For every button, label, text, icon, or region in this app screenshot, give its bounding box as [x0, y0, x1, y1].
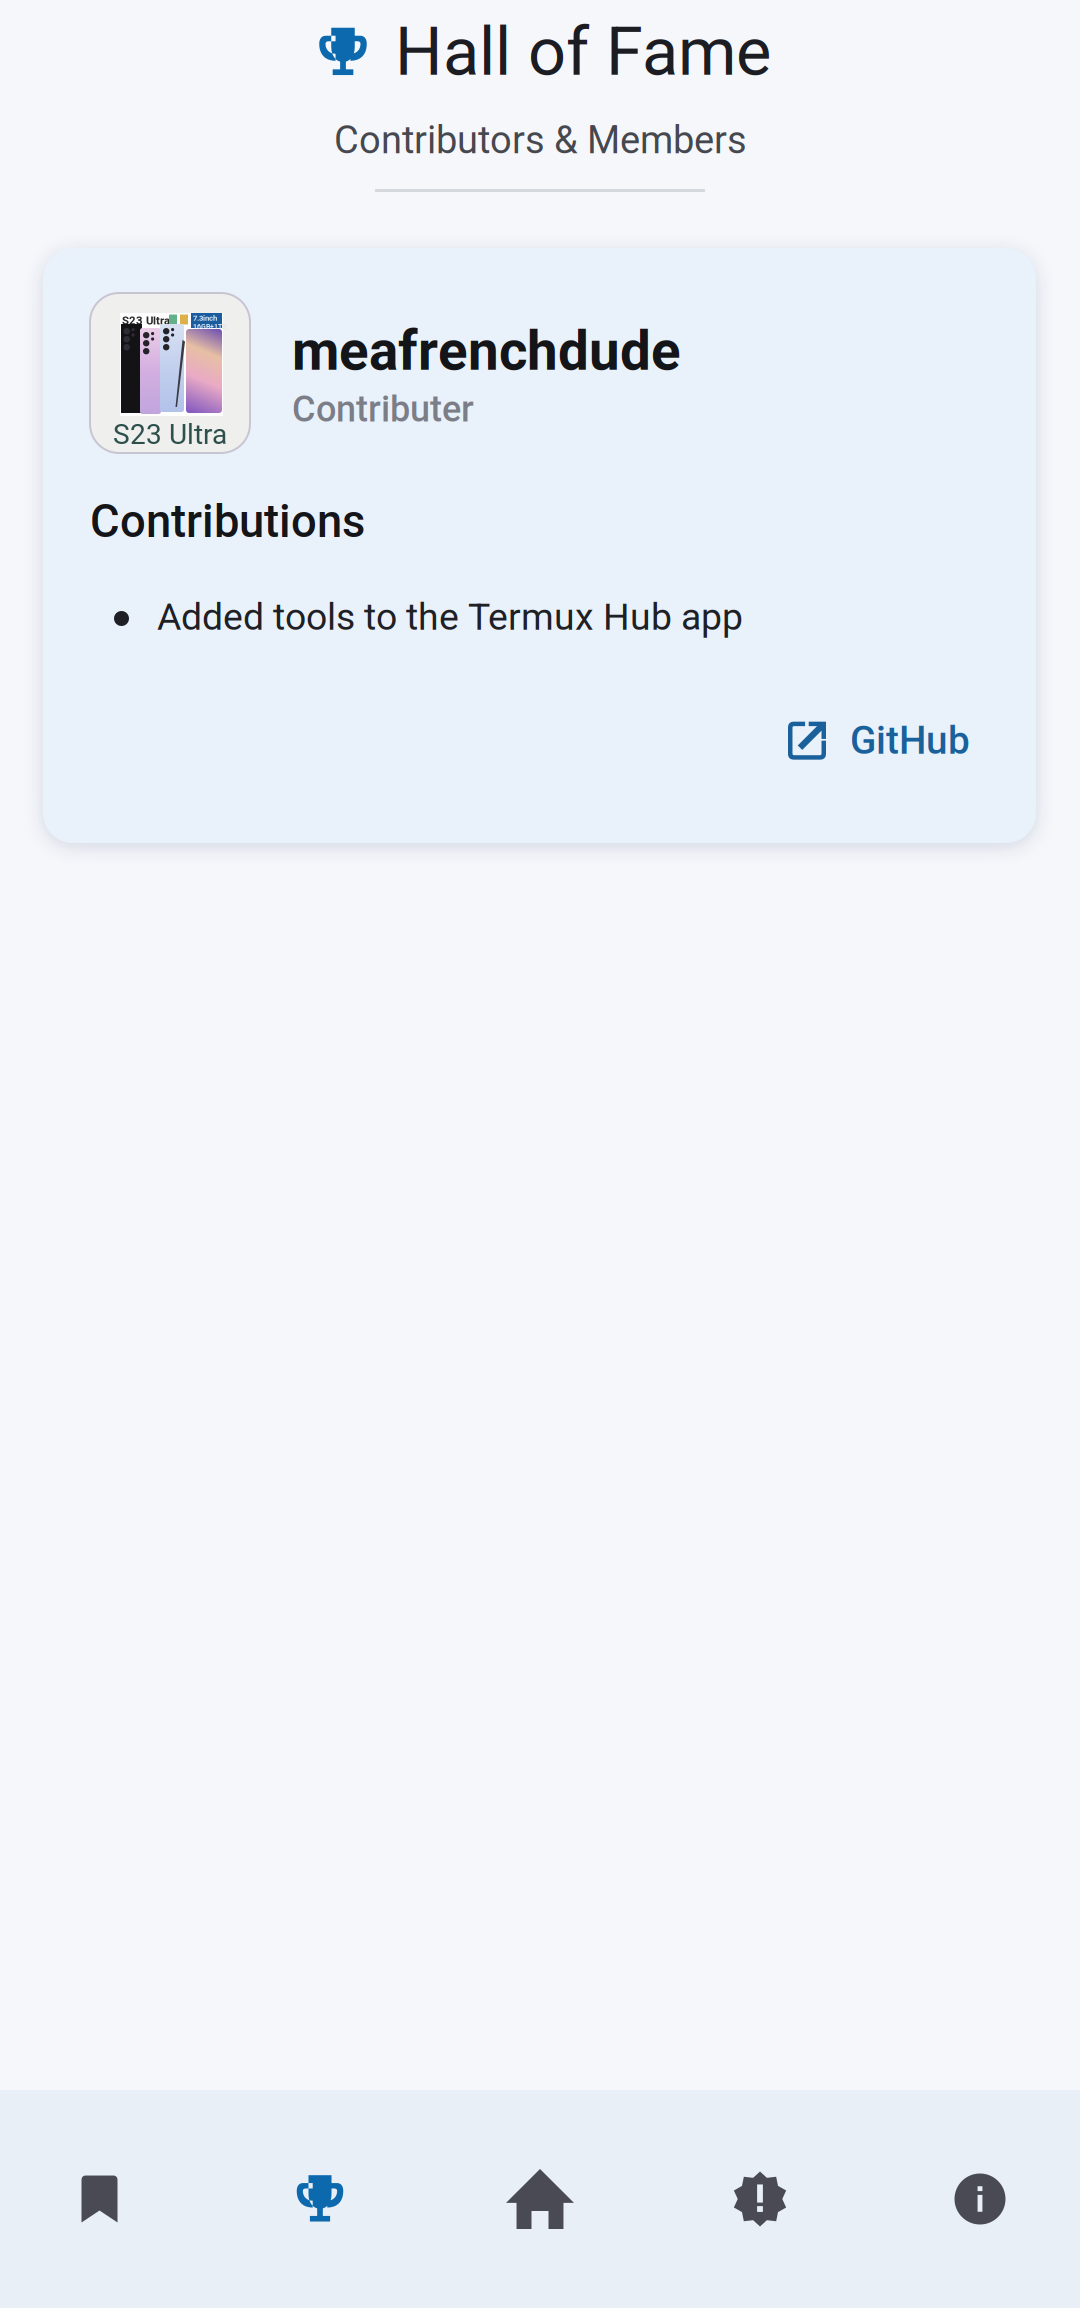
staticText: Contributors & Members [334, 118, 747, 162]
staticText: S23 Ultra [122, 314, 170, 327]
button[interactable]: Updates [639, 2090, 881, 2308]
button[interactable]: About [881, 2090, 1079, 2308]
staticText: 7.3inch [193, 313, 217, 323]
staticText: meafrenchdude [292, 319, 681, 383]
staticText: 16GB+1TB [193, 323, 226, 331]
staticText: GitHub [850, 718, 970, 763]
button[interactable]: GitHub [772, 708, 984, 773]
button[interactable]: Home [441, 2090, 639, 2308]
button[interactable]: Hall of Fame [199, 2090, 441, 2308]
staticText: S23 Ultra [113, 418, 227, 451]
staticText: Contributions [90, 495, 365, 548]
staticText: Hall of Fame [395, 13, 771, 91]
button[interactable]: Saved [0, 2090, 199, 2308]
button[interactable]: S23 Ultra [90, 293, 990, 453]
staticText: Added tools to the Termux Hub app [157, 595, 743, 639]
staticText: Contributer [292, 388, 474, 430]
